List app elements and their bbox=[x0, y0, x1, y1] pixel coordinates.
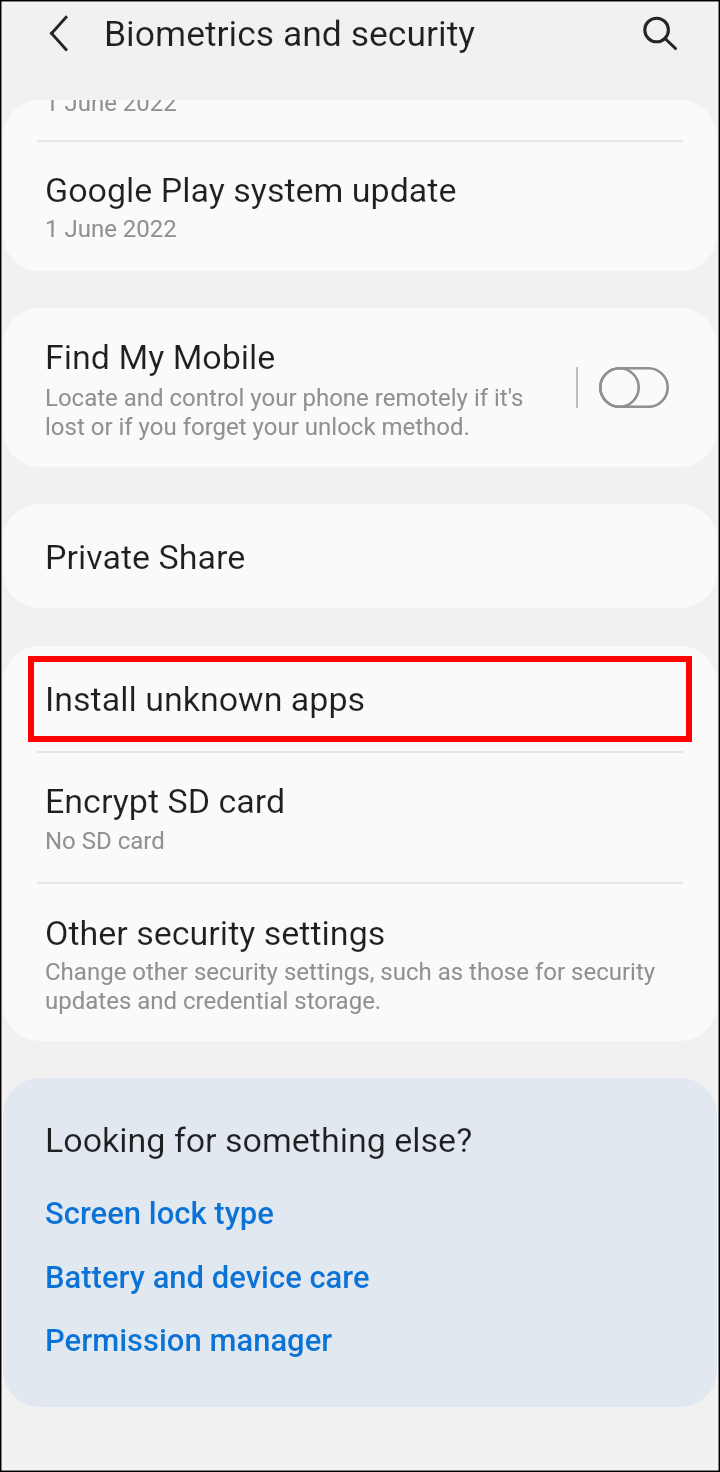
button[interactable]: Encrypt SD card bbox=[3, 752, 717, 882]
staticText: Google Play system update bbox=[45, 170, 457, 210]
staticText: No SD card bbox=[45, 827, 165, 855]
staticText: 1 June 2022 bbox=[45, 215, 177, 243]
staticText: Biometrics and security bbox=[104, 13, 476, 55]
button[interactable]: Permission manager bbox=[33, 1311, 673, 1365]
staticText: Battery and device care bbox=[45, 1259, 370, 1295]
button[interactable]: Other security settings bbox=[3, 883, 717, 1041]
button[interactable]: Screen lock type bbox=[33, 1184, 673, 1238]
button[interactable]: Install unknown apps bbox=[3, 646, 717, 751]
staticText: 1 June 2022 bbox=[45, 100, 177, 117]
button[interactable]: 1 June 2022 bbox=[3, 100, 717, 140]
button[interactable]: Private Share bbox=[3, 504, 717, 608]
staticText: Private Share bbox=[45, 537, 246, 577]
button[interactable]: Google Play system update bbox=[3, 141, 717, 271]
button[interactable]: Find My Mobile bbox=[3, 308, 717, 467]
button[interactable]: Battery and device care bbox=[33, 1248, 673, 1302]
staticText: Change other security settings, such as … bbox=[45, 958, 656, 1015]
button[interactable]: Search bbox=[630, 4, 682, 56]
staticText: Install unknown apps bbox=[45, 679, 366, 719]
staticText: Screen lock type bbox=[45, 1195, 274, 1231]
button[interactable]: Find My Mobile switch, off bbox=[599, 367, 669, 408]
staticText: Looking for something else? bbox=[45, 1120, 473, 1160]
staticText: Other security settings bbox=[45, 913, 386, 953]
staticText: Permission manager bbox=[45, 1322, 333, 1358]
button[interactable]: Navigate up bbox=[34, 9, 82, 57]
staticText: Encrypt SD card bbox=[45, 781, 286, 821]
staticText: Find My Mobile bbox=[45, 337, 276, 377]
staticText: Locate and control your phone remotely i… bbox=[45, 384, 524, 441]
